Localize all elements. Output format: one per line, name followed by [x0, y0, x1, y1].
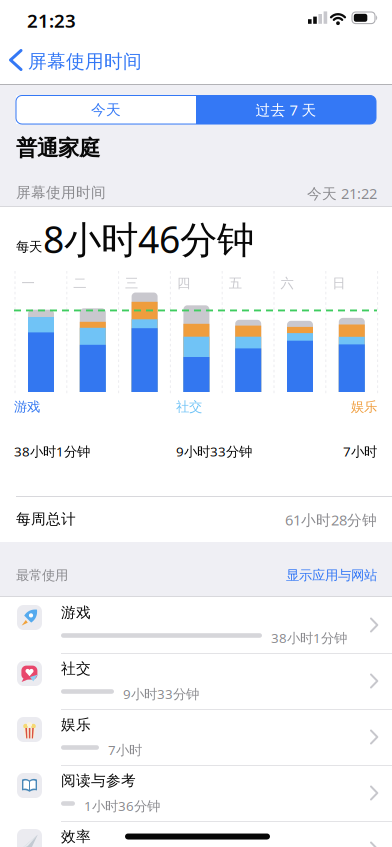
staticText: 21:23 [27, 8, 76, 33]
staticText: 每周总计 [16, 510, 76, 528]
staticText: 1小时36分钟 [84, 797, 160, 815]
staticText: 显示应用与网站 [286, 567, 377, 583]
staticText: 六 [280, 275, 293, 291]
button[interactable]: 过去 7 天 [196, 95, 376, 124]
staticText: 屏幕使用时间 [28, 50, 142, 73]
staticText: 屏幕使用时间 [16, 183, 106, 201]
button[interactable]: 娱乐 [0, 709, 392, 765]
button[interactable]: 显示应用与网站 [286, 567, 377, 583]
button[interactable]: 阅读与参考 [0, 765, 392, 821]
staticText: 娱乐 [351, 398, 377, 415]
staticText: 今天 21:22 [307, 183, 377, 203]
staticText: 38小时1分钟 [14, 442, 90, 460]
staticText: 游戏 [61, 603, 91, 621]
staticText: 娱乐 [61, 715, 91, 733]
staticText: 二 [73, 275, 86, 291]
staticText: 阅读与参考 [61, 771, 136, 789]
staticText: 社交 [176, 398, 202, 415]
staticText: 9小时33分钟 [123, 685, 199, 703]
staticText: 61小时28分钟 [285, 510, 377, 529]
button[interactable]: 今天 [16, 95, 196, 124]
staticText: 最常使用 [16, 567, 68, 583]
staticText: 游戏 [14, 398, 40, 415]
button[interactable]: 屏幕使用时间 [4, 48, 214, 73]
staticText: 7小时 [108, 741, 142, 759]
staticText: 四 [177, 275, 190, 291]
staticText: 三 [125, 275, 138, 291]
staticText: 普通家庭 [16, 135, 100, 161]
staticText: 8小时46分钟 [43, 214, 254, 264]
staticText: 一 [21, 275, 34, 291]
staticText: 过去 7 天 [255, 100, 316, 119]
staticText: 38小时1分钟 [271, 629, 347, 647]
button[interactable]: 效率 [0, 821, 392, 847]
staticText: 社交 [61, 659, 91, 677]
button[interactable]: 社交 [0, 653, 392, 709]
staticText: 五 [229, 275, 242, 291]
staticText: 今天 [91, 101, 121, 119]
staticText: 效率 [61, 827, 91, 845]
staticText: 日 [332, 275, 345, 291]
staticText: 7小时 [343, 442, 377, 460]
button[interactable]: 游戏 [0, 597, 392, 653]
staticText: 每天 [16, 238, 42, 255]
staticText: 9小时33分钟 [176, 442, 252, 460]
